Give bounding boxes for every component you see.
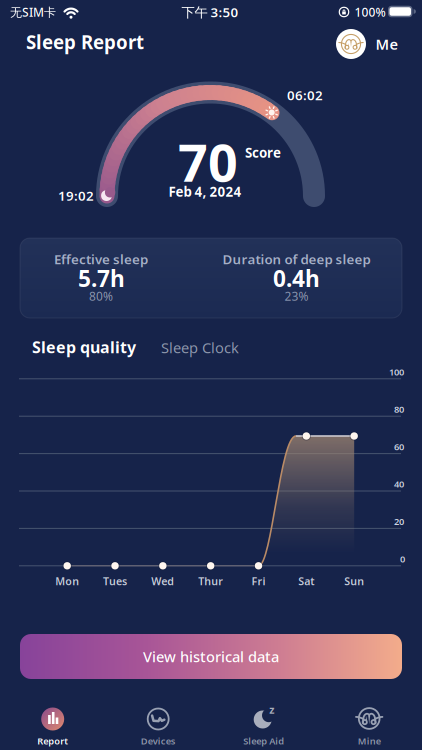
staticText: Effective sleep: [54, 250, 148, 268]
staticText: Feb 4, 2024: [168, 183, 241, 200]
staticText: 下午 3:50: [181, 3, 238, 21]
staticText: Wed: [151, 574, 174, 588]
staticText: Sleep Clock: [161, 338, 239, 357]
staticText: Sun: [344, 574, 364, 588]
staticText: Sleep Report: [26, 30, 144, 54]
button[interactable]: Report: [18, 699, 88, 749]
staticText: Report: [37, 735, 68, 747]
staticText: Mine: [358, 735, 381, 747]
staticText: Sleep Aid: [243, 735, 284, 747]
button[interactable]: Mine: [334, 699, 404, 749]
staticText: Score: [245, 144, 281, 161]
staticText: Duration of deep sleep: [223, 250, 371, 268]
button[interactable]: Sleep quality: [32, 336, 136, 358]
button[interactable]: Devices: [123, 699, 193, 749]
staticText: Thur: [198, 574, 223, 588]
staticText: 23%: [285, 288, 309, 304]
button[interactable]: Sleep Clock: [161, 338, 239, 357]
button[interactable]: Me: [335, 27, 401, 61]
staticText: 100%: [354, 4, 385, 20]
staticText: 80: [394, 403, 404, 415]
staticText: 无SIM卡: [10, 4, 56, 20]
staticText: Me: [375, 34, 398, 54]
staticText: Fri: [251, 574, 265, 588]
staticText: 100: [389, 366, 404, 378]
staticText: 5.7h: [78, 263, 125, 293]
staticText: Mon: [55, 574, 79, 588]
staticText: Devices: [141, 735, 176, 747]
button[interactable]: z: [229, 699, 299, 749]
staticText: 20: [394, 515, 404, 528]
staticText: 06:02: [287, 86, 323, 104]
staticText: View historical data: [143, 647, 279, 666]
staticText: 0.4h: [273, 263, 320, 293]
staticText: z: [269, 702, 274, 717]
staticText: 60: [394, 440, 404, 453]
staticText: 70: [178, 127, 238, 196]
staticText: 80%: [89, 288, 113, 304]
staticText: 0: [400, 553, 405, 565]
staticText: 40: [394, 478, 404, 490]
staticText: Sat: [298, 574, 314, 588]
button[interactable]: View historical data: [20, 634, 402, 679]
staticText: 19:02: [58, 187, 94, 204]
staticText: Sleep quality: [32, 336, 136, 358]
staticText: Tues: [103, 574, 127, 588]
